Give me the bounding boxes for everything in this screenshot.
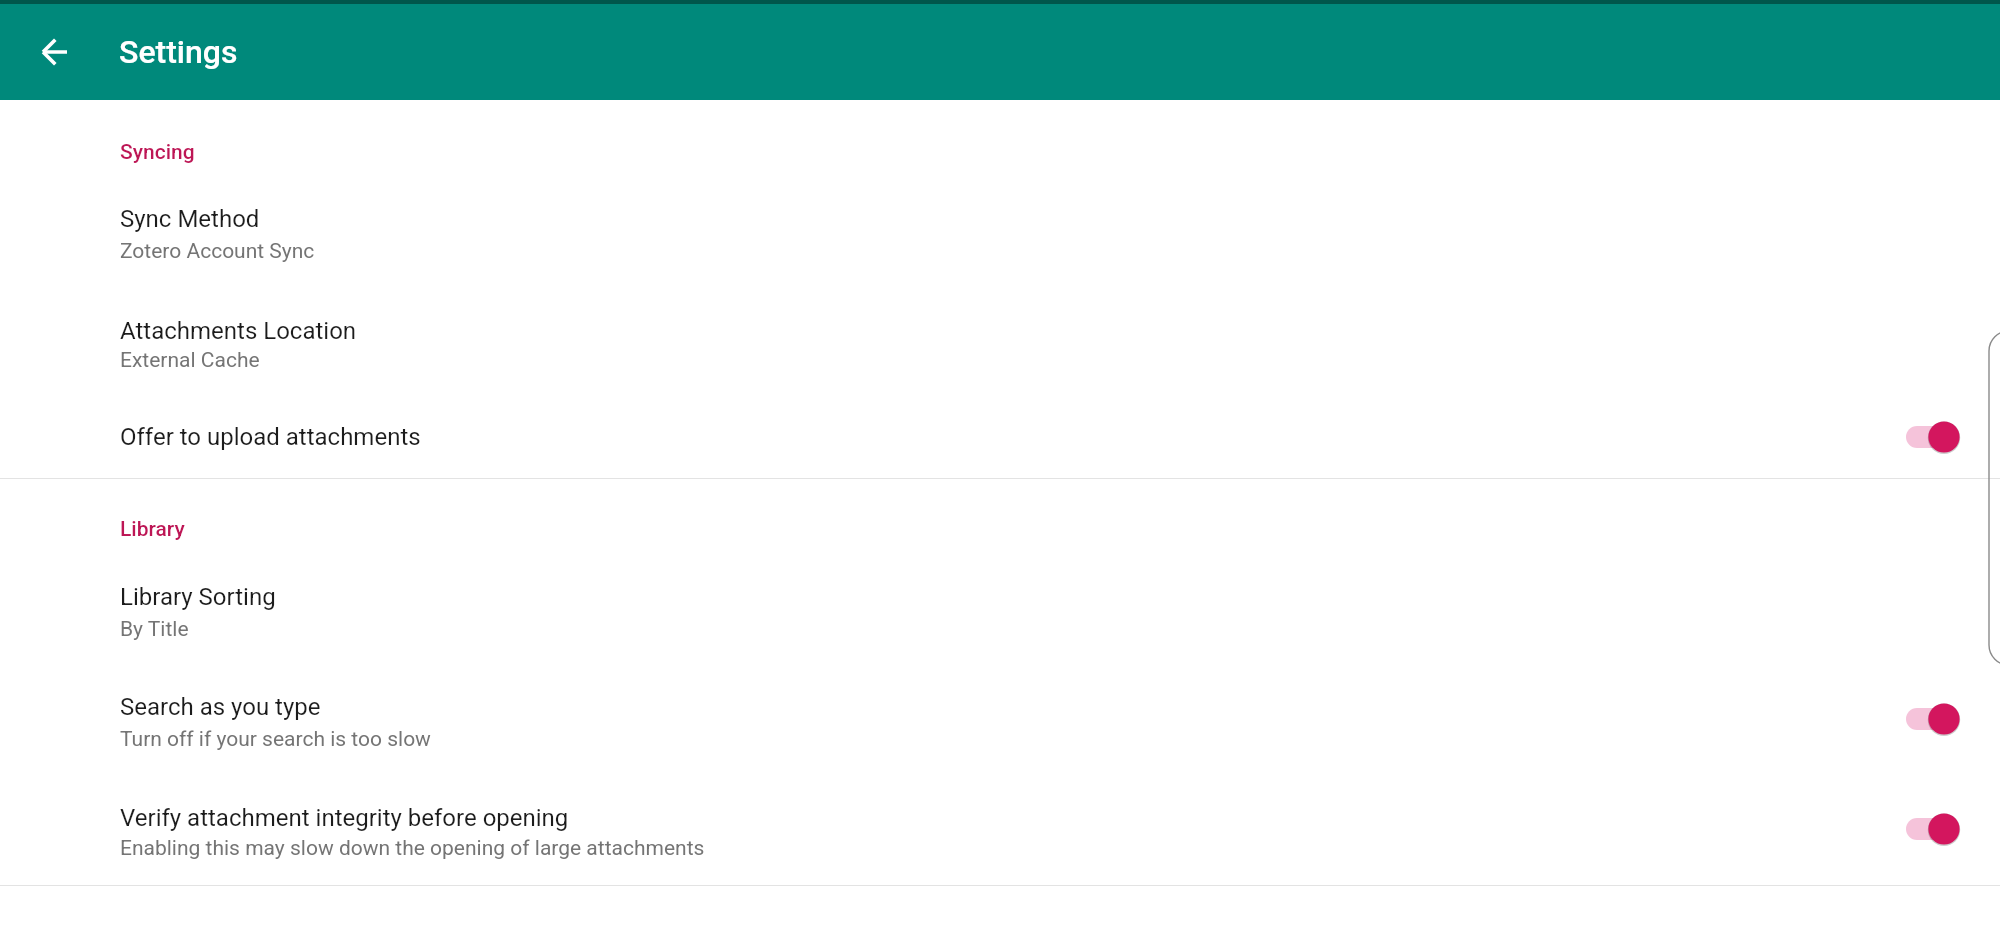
staticText: External Cache bbox=[120, 348, 260, 373]
staticText: Library bbox=[120, 517, 185, 542]
staticText: Sync Method bbox=[120, 205, 260, 233]
button[interactable]: Verify attachment integrity before openi… bbox=[0, 787, 2000, 861]
staticText: Zotero Account Sync bbox=[120, 239, 315, 264]
button[interactable]: Search as you type bbox=[0, 676, 2000, 750]
button[interactable]: Verify attachment integrity before openi… bbox=[1888, 801, 1972, 857]
staticText: Syncing bbox=[120, 140, 195, 165]
staticText: Offer to upload attachments bbox=[120, 423, 421, 451]
staticText: Search as you type bbox=[120, 693, 321, 721]
staticText: Settings bbox=[119, 33, 238, 71]
button[interactable]: Back bbox=[27, 24, 83, 80]
button[interactable]: Offer to upload attachments bbox=[1888, 409, 1972, 465]
button[interactable]: Offer to upload attachments bbox=[0, 407, 2000, 469]
staticText: Attachments Location bbox=[120, 317, 357, 345]
button[interactable]: Sync Method bbox=[0, 188, 2000, 262]
staticText: Library Sorting bbox=[120, 583, 276, 611]
staticText: Enabling this may slow down the opening … bbox=[120, 836, 705, 861]
button[interactable]: Search as you type bbox=[1888, 691, 1972, 747]
staticText: Turn off if your search is too slow bbox=[120, 727, 431, 752]
button[interactable]: Library Sorting bbox=[0, 566, 2000, 640]
button[interactable]: Attachments Location bbox=[0, 301, 2000, 375]
staticText: By Title bbox=[120, 617, 189, 642]
staticText: Verify attachment integrity before openi… bbox=[120, 804, 569, 832]
